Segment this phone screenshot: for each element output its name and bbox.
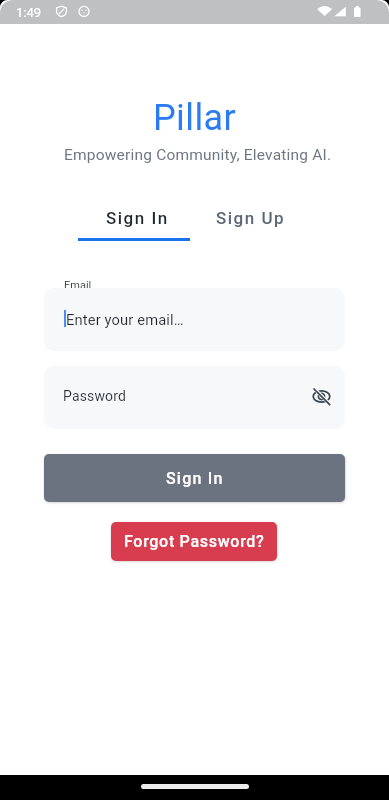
button[interactable]: Forgot Password? — [111, 522, 277, 561]
staticText: Sign In — [106, 208, 169, 228]
staticText: Pillar — [153, 97, 237, 139]
button[interactable] — [311, 386, 332, 407]
staticText: Sign Up — [216, 208, 286, 228]
staticText: Email — [64, 279, 92, 292]
staticText: Password — [63, 388, 127, 404]
button[interactable] — [44, 288, 345, 351]
staticText: Enter your email… — [66, 311, 184, 328]
button[interactable]: Sign In — [44, 454, 345, 502]
staticText: Sign In — [166, 469, 224, 488]
button[interactable]: Sign Up — [192, 198, 309, 238]
staticText: 1:49 — [16, 5, 42, 20]
staticText: Empowering Community, Elevating AI. — [64, 146, 332, 164]
button[interactable] — [44, 366, 345, 429]
button[interactable]: Sign In — [81, 198, 193, 238]
staticText: Forgot Password? — [124, 532, 265, 551]
